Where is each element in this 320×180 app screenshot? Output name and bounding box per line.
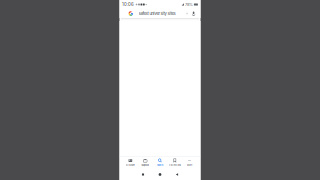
button[interactable]: Back <box>168 169 185 180</box>
staticText: Collections <box>169 164 181 166</box>
button[interactable]: More <box>182 157 197 168</box>
button[interactable]: Home <box>151 169 168 180</box>
staticText: Snapshot <box>141 164 149 166</box>
staticText: Search <box>157 164 163 166</box>
button[interactable]: Voice search <box>190 9 200 18</box>
staticText: safest university sites <box>138 11 175 16</box>
staticText: More <box>187 164 192 166</box>
button[interactable]: Snapshot <box>138 157 153 168</box>
button[interactable]: Clear search <box>184 9 190 18</box>
staticText: 78% <box>185 2 193 7</box>
staticText: 10:06 <box>122 2 134 7</box>
button[interactable]: Collections <box>167 157 182 168</box>
button[interactable]: Discover <box>123 157 138 168</box>
button[interactable]: Search <box>153 157 167 168</box>
button[interactable]: Google <box>119 9 138 18</box>
button[interactable]: Recent apps <box>134 169 151 180</box>
staticText: Discover <box>126 164 135 166</box>
